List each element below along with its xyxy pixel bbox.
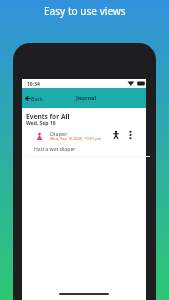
staticText: 10:34 <box>27 81 40 88</box>
staticText: Had a wet diaper <box>34 145 76 152</box>
staticText: Easy to use views <box>44 4 126 18</box>
staticText: Back <box>31 95 43 102</box>
button[interactable]: Back <box>22 90 47 107</box>
staticText: Events for All <box>26 112 70 121</box>
button[interactable]: Diaper <box>22 127 146 151</box>
staticText: Wed, Sep 16 2020, 10:01 pm <box>50 136 102 141</box>
staticText: Diaper <box>50 130 68 138</box>
button[interactable]: More options <box>124 129 136 141</box>
button[interactable]: Child <box>110 129 122 141</box>
staticText: Wed, Sep 16 <box>26 120 56 127</box>
staticText: Journal <box>76 94 97 102</box>
